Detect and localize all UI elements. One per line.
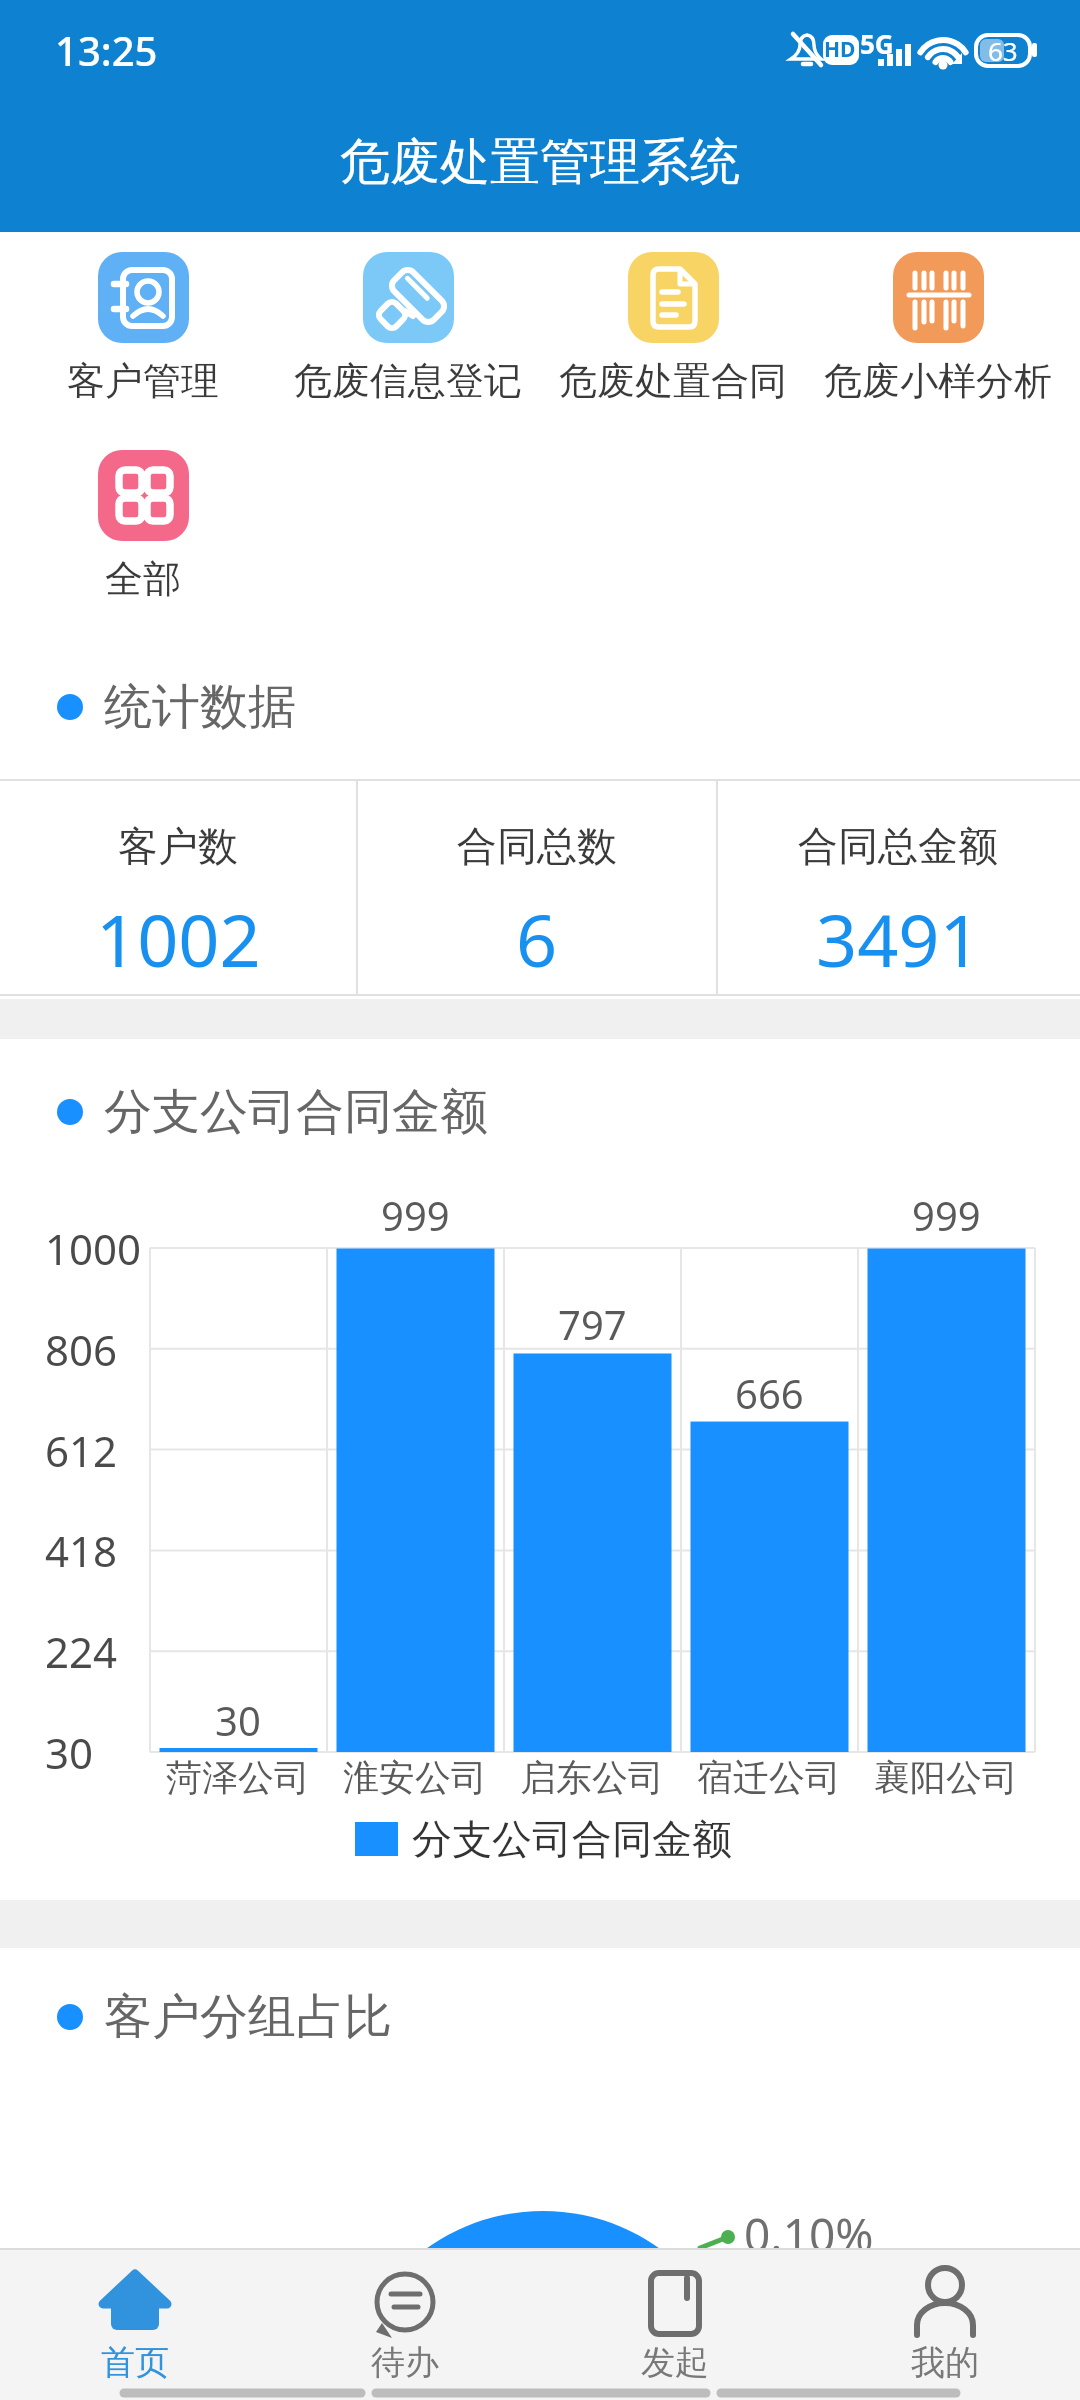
staticText: 1000: [45, 1220, 142, 1277]
staticText: 首页: [101, 2341, 169, 2384]
staticText: 客户管理: [67, 357, 219, 405]
staticText: 客户数: [118, 821, 238, 871]
staticText: 襄阳公司: [874, 1755, 1018, 1800]
staticText: 612: [45, 1422, 118, 1479]
staticText: 418: [45, 1522, 118, 1579]
staticText: 合同总数: [457, 821, 617, 871]
staticText: HD: [824, 35, 856, 64]
staticText: 待办: [371, 2341, 439, 2384]
button[interactable]: [0, 781, 356, 995]
button[interactable]: [828, 246, 1048, 406]
staticText: 分支公司合同金额: [104, 1082, 488, 1142]
button[interactable]: [718, 781, 1080, 995]
staticText: 30: [45, 1724, 94, 1781]
staticText: 我的: [911, 2341, 979, 2384]
button[interactable]: [820, 2252, 1070, 2396]
button[interactable]: [550, 2252, 800, 2396]
staticText: 全部: [105, 555, 181, 603]
button[interactable]: [33, 444, 253, 604]
button[interactable]: [10, 2252, 260, 2396]
staticText: 13:25: [55, 23, 158, 77]
staticText: 1002: [96, 890, 261, 970]
staticText: 6: [516, 890, 558, 970]
staticText: 客户分组占比: [104, 1987, 392, 2047]
staticText: 分支公司合同金额: [412, 1814, 732, 1864]
staticText: 999: [912, 1188, 981, 1242]
button[interactable]: [358, 781, 716, 995]
staticText: 宿迁公司: [697, 1755, 841, 1800]
staticText: 合同总金额: [798, 821, 998, 871]
staticText: 淮安公司: [343, 1755, 487, 1800]
staticText: 启东公司: [520, 1755, 664, 1800]
staticText: 224: [45, 1623, 118, 1680]
staticText: 999: [381, 1188, 450, 1242]
staticText: 806: [45, 1321, 118, 1378]
button[interactable]: [298, 246, 518, 406]
staticText: 666: [735, 1366, 804, 1420]
button[interactable]: [33, 246, 253, 406]
staticText: 3491: [816, 890, 981, 970]
staticText: 危废信息登记: [294, 357, 522, 405]
staticText: 菏泽公司: [166, 1755, 310, 1800]
staticText: 63: [988, 33, 1018, 68]
staticText: 30: [215, 1693, 261, 1747]
staticText: 危废小样分析: [824, 357, 1052, 405]
button[interactable]: [280, 2252, 530, 2396]
staticText: 5G: [860, 26, 894, 61]
staticText: 危废处置合同: [559, 357, 787, 405]
button[interactable]: [563, 246, 783, 406]
staticText: 危废处置管理系统: [340, 131, 740, 194]
staticText: 797: [558, 1297, 627, 1351]
staticText: 0.10%: [744, 2203, 874, 2266]
staticText: 统计数据: [104, 677, 296, 737]
staticText: 发起: [641, 2341, 709, 2384]
